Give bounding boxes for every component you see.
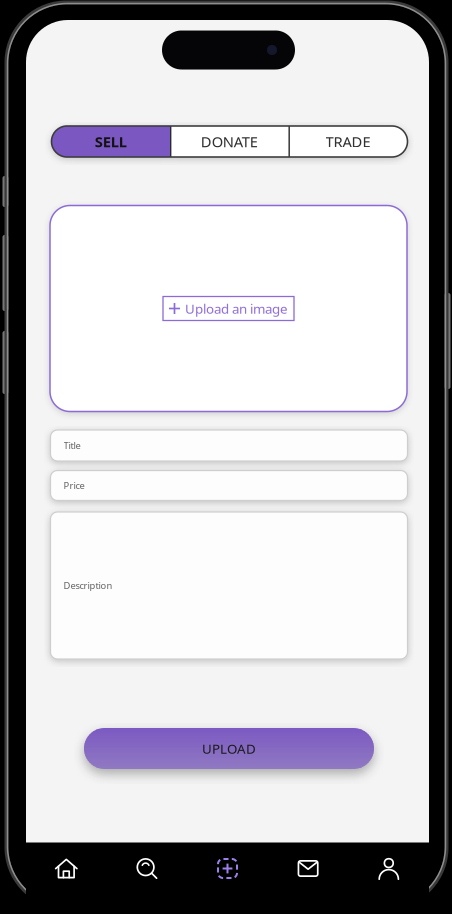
staticText: TRADE xyxy=(325,132,370,151)
button[interactable]: TRADE xyxy=(288,126,407,157)
button[interactable]: Title xyxy=(50,430,407,461)
button[interactable]: Profile xyxy=(348,842,429,894)
button[interactable]: Search xyxy=(107,842,187,894)
staticText: UPLOAD xyxy=(202,740,256,757)
button[interactable]: Description xyxy=(50,512,407,659)
staticText: DONATE xyxy=(201,132,258,151)
staticText: Description xyxy=(63,579,112,592)
button[interactable]: Create listing xyxy=(187,842,268,894)
button[interactable]: Home xyxy=(26,842,107,894)
staticText: Title xyxy=(63,439,80,452)
staticText: SELL xyxy=(95,132,127,151)
button[interactable]: UPLOAD xyxy=(84,728,374,769)
button[interactable]: DONATE xyxy=(170,126,288,157)
staticText: Price xyxy=(63,479,84,492)
staticText: Upload an image xyxy=(185,300,288,317)
button[interactable]: SELL xyxy=(51,126,170,157)
button[interactable]: Price xyxy=(50,470,407,500)
button[interactable]: Messages xyxy=(268,842,348,894)
button[interactable]: Upload an image xyxy=(163,296,294,320)
